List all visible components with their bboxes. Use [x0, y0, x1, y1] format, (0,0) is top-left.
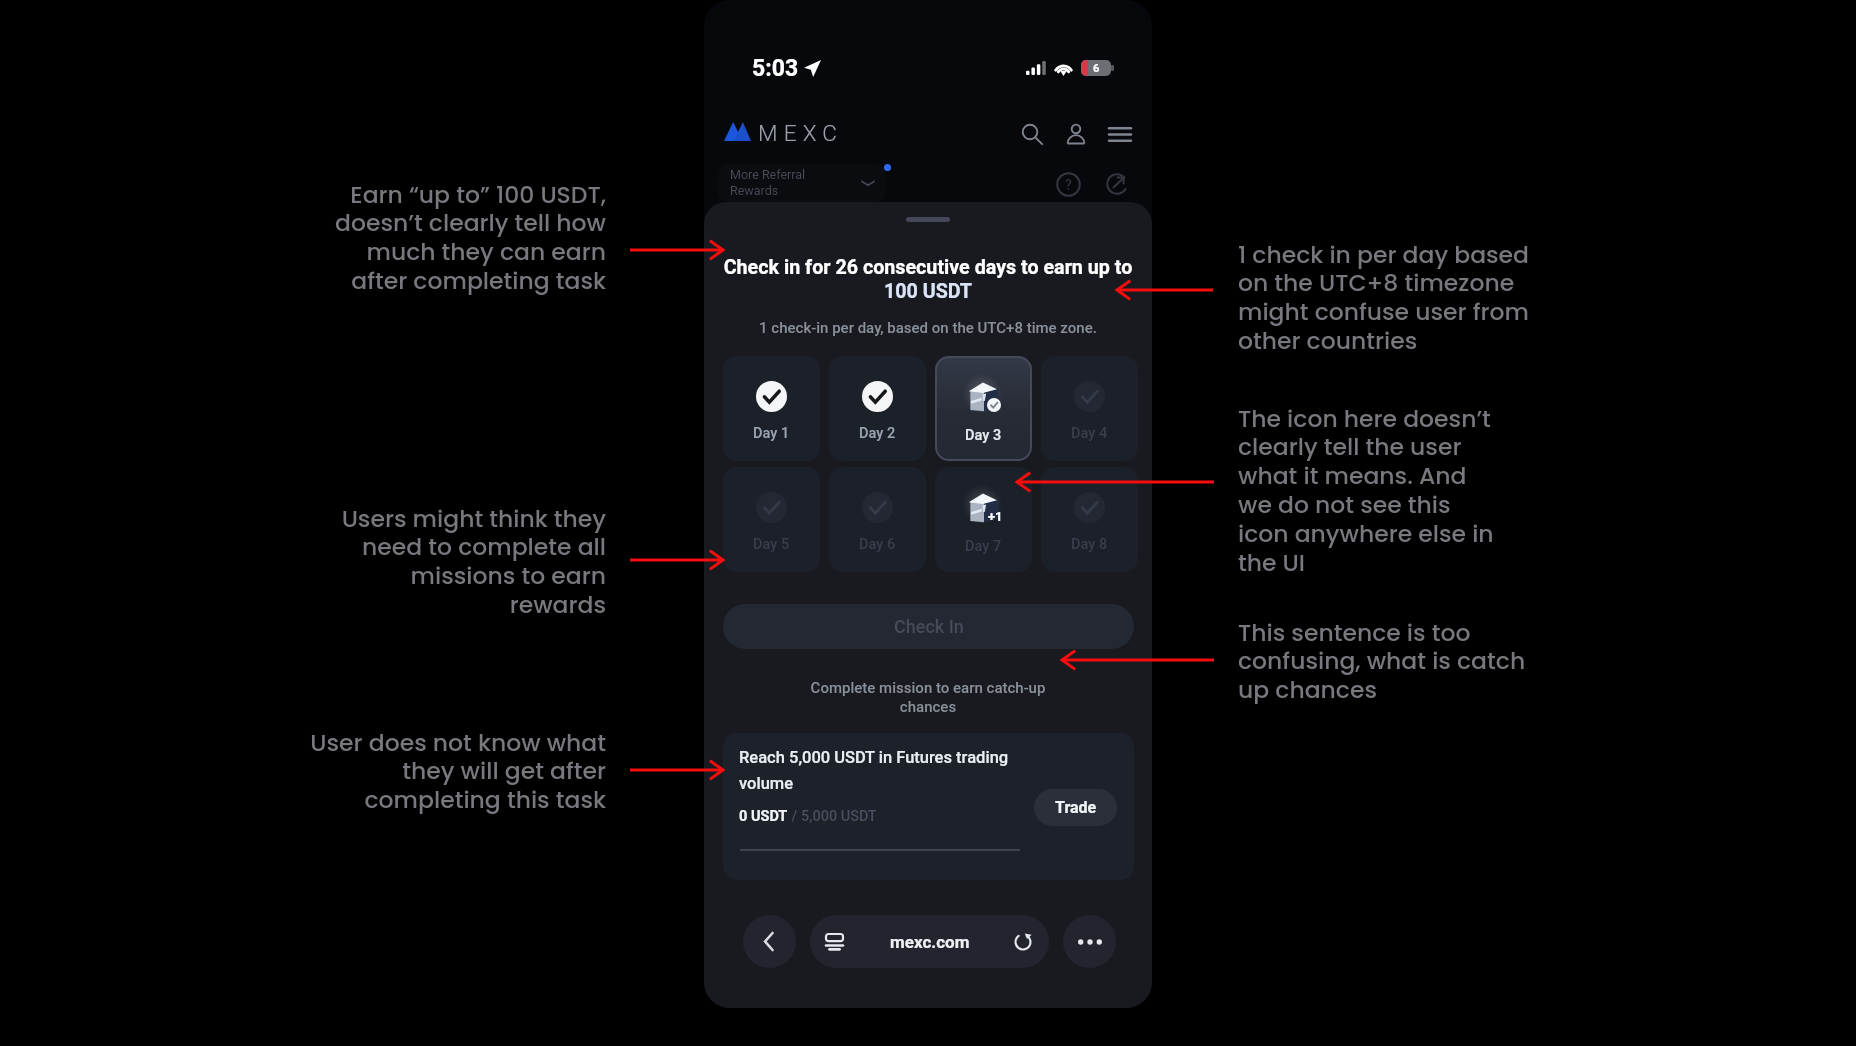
button[interactable]: Trade: [1034, 789, 1117, 826]
staticText: / 5,000 USDT: [788, 808, 877, 825]
staticText: Check In: [894, 616, 964, 637]
staticText: The icon here doesn’t clearly tell the u…: [1238, 402, 1568, 579]
staticText: +1: [988, 509, 1003, 524]
staticText: Check in for 26 consecutive days to earn…: [704, 256, 1152, 279]
button[interactable]: More options: [1063, 915, 1116, 968]
staticText: 100 USDT: [704, 280, 1152, 303]
staticText: Trade: [1055, 798, 1097, 817]
staticText: 6: [1093, 62, 1100, 75]
button[interactable]: +1: [935, 467, 1032, 572]
button[interactable]: Back: [743, 915, 796, 968]
staticText: Day 3: [965, 427, 1002, 444]
staticText: Day 4: [1071, 425, 1108, 442]
button[interactable]: Day 2: [829, 356, 926, 461]
button[interactable]: Menu: [1104, 118, 1136, 150]
button[interactable]: Reader view: [817, 924, 852, 959]
staticText: ?: [1065, 177, 1072, 193]
staticText: This sentence is too confusing, what is …: [1238, 616, 1568, 706]
staticText: Day 6: [859, 536, 896, 553]
button[interactable]: Day 6: [829, 467, 926, 572]
staticText: 0 USDT: [739, 808, 788, 825]
staticText: MEXC: [758, 120, 844, 146]
staticText: Day 1: [753, 425, 790, 442]
staticText: Day 5: [753, 536, 790, 553]
button[interactable]: Check In: [723, 604, 1134, 649]
button[interactable]: Day 8: [1041, 467, 1138, 572]
button[interactable]: Reach 5,000 USDT in Futures trading volu…: [723, 733, 1134, 880]
button[interactable]: Share: [1106, 173, 1128, 195]
staticText: mexc.com: [890, 932, 970, 952]
staticText: Reach 5,000 USDT in Futures trading volu…: [739, 748, 1009, 793]
button[interactable]: Reload: [1005, 924, 1040, 959]
staticText: User does not know what they will get af…: [286, 726, 606, 816]
button[interactable]: Search: [1016, 118, 1048, 150]
button[interactable]: Day 4: [1041, 356, 1138, 461]
button[interactable]: Day 1: [723, 356, 820, 461]
staticText: Earn “up to” 100 USDT, doesn’t clearly t…: [296, 178, 606, 297]
button[interactable]: Day 3: [935, 356, 1032, 461]
staticText: Day 2: [859, 425, 896, 442]
staticText: Day 7: [965, 538, 1002, 555]
staticText: Day 8: [1071, 536, 1108, 553]
button[interactable]: More Referral Rewards: [718, 164, 886, 202]
staticText: 1 check-in per day, based on the UTC+8 t…: [704, 319, 1152, 337]
staticText: Complete mission to earn catch-up chance…: [704, 679, 1152, 716]
button[interactable]: Day 5: [723, 467, 820, 572]
staticText: 5:03: [752, 55, 799, 82]
button[interactable]: Reader view: [810, 915, 1049, 968]
staticText: More Referral Rewards: [730, 167, 806, 199]
staticText: Users might think they need to complete …: [296, 502, 606, 621]
staticText: 1 check in per day based on the UTC+8 ti…: [1238, 238, 1568, 357]
button[interactable]: Account: [1060, 118, 1092, 150]
button[interactable]: Help: [1056, 172, 1081, 197]
